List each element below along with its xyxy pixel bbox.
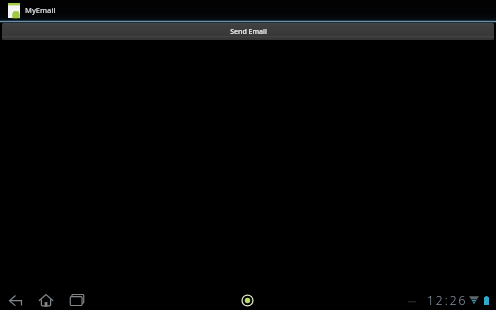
button[interactable]: Recent apps: [65, 289, 89, 310]
staticText: Send Email: [230, 27, 267, 37]
button[interactable]: Notifications: [237, 289, 257, 310]
button[interactable]: Back: [3, 289, 27, 310]
button[interactable]: MyEmail: [0, 0, 66, 20]
staticText: MyEmail: [25, 5, 56, 15]
staticText: 12:26: [427, 292, 468, 308]
button[interactable]: Send Email: [2, 23, 494, 40]
button[interactable]: Home: [34, 289, 58, 310]
